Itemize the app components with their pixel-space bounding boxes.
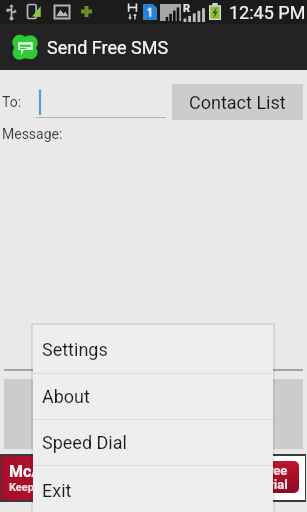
button[interactable]: Contact List	[172, 84, 303, 120]
button[interactable]: Speed Dial	[33, 420, 273, 465]
staticText: Send Free SMS	[47, 37, 169, 58]
staticText: Free Trial	[261, 463, 288, 492]
staticText: McAfee	[9, 462, 65, 481]
button[interactable]: Settings	[33, 325, 273, 373]
staticText: Settings	[42, 339, 108, 360]
staticText: About	[42, 386, 90, 407]
button[interactable]: Send Free SMS	[0, 24, 307, 70]
staticText: 12:45 PM	[229, 2, 306, 23]
staticText: To:	[2, 94, 22, 110]
staticText: Exit	[42, 480, 72, 501]
button[interactable]: About	[33, 374, 273, 419]
button[interactable]: McAfee advertisement	[0, 454, 306, 502]
button[interactable]: Recipient	[36, 86, 166, 118]
staticText: Speed Dial	[42, 432, 127, 453]
staticText: R	[183, 2, 191, 15]
staticText: Message:	[2, 126, 63, 142]
staticText: Contact List	[189, 92, 286, 113]
button[interactable]: Exit	[33, 466, 273, 512]
button[interactable]: Clear	[157, 379, 303, 449]
staticText: Keep your phone safe	[9, 481, 116, 494]
button[interactable]: Send	[4, 379, 150, 449]
button[interactable]: Message body	[4, 150, 303, 371]
